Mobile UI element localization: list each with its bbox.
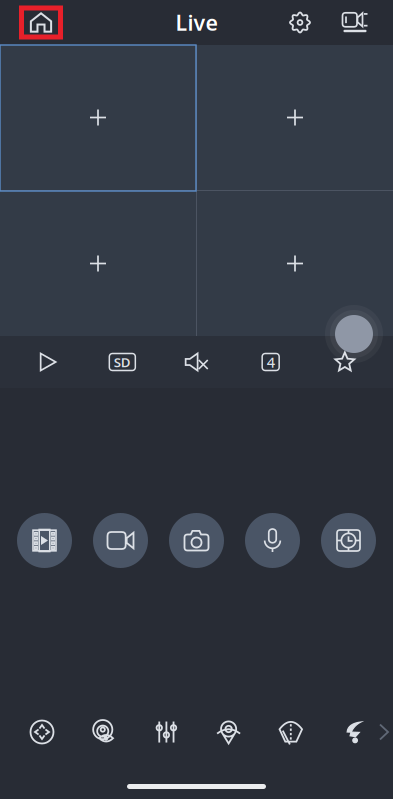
button[interactable]: Device list <box>336 2 374 42</box>
button[interactable]: Stream quality SD <box>96 342 148 382</box>
button[interactable]: Image settings <box>146 706 186 758</box>
staticText: Live <box>175 8 217 37</box>
staticText: SD <box>114 353 131 371</box>
button[interactable]: Wiper <box>271 706 311 758</box>
button[interactable]: Play <box>22 342 74 382</box>
staticText: 4 <box>267 352 275 372</box>
button[interactable]: Favorite <box>319 342 371 382</box>
button[interactable]: Mute <box>170 342 222 382</box>
button[interactable]: More <box>373 707 393 757</box>
button[interactable]: Snapshot <box>169 513 224 568</box>
button[interactable]: Talk <box>245 513 300 568</box>
button[interactable]: Grid layout <box>245 342 297 382</box>
button[interactable]: PTZ <box>22 706 62 758</box>
button[interactable]: Lens <box>84 706 124 758</box>
button[interactable]: Home <box>19 5 63 39</box>
button[interactable]: Settings <box>280 2 320 42</box>
button[interactable]: Focus <box>321 513 376 568</box>
button[interactable]: Record <box>93 513 148 568</box>
button[interactable]: Alarm <box>333 706 373 758</box>
button[interactable]: Playback <box>17 513 72 568</box>
button[interactable]: Preset <box>209 706 249 758</box>
